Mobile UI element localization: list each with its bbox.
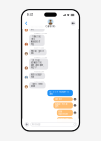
staticText: I don't even know <box>30 83 42 87</box>
button[interactable]: FaceTime <box>67 19 79 28</box>
staticText: Caroline <box>45 25 54 28</box>
button[interactable]: Add attachment <box>24 122 29 127</box>
staticText: Let's try Tuesday to take <box>49 91 69 95</box>
staticText: Read 11:14 AM <box>34 47 44 49</box>
staticText: Maybe next year <box>58 118 69 122</box>
staticText: Today 9:02 AM <box>34 71 44 72</box>
button[interactable]: Message field <box>31 122 77 126</box>
staticText: 9:41 <box>27 13 33 17</box>
staticText: Can you send me <box>30 26 42 31</box>
staticText: Early September <box>58 111 68 115</box>
staticText: I'm free between the <box>30 59 41 64</box>
staticText: August 7th at 2pm <box>55 103 68 108</box>
staticText: Been a busy year <box>30 74 41 78</box>
staticText: Today 9:19 AM <box>34 80 44 82</box>
button[interactable]: Caroline, contact info <box>43 18 58 29</box>
staticText: July 5th <box>55 98 62 100</box>
staticText: Yesterday 11:02 AM <box>34 33 47 34</box>
staticText: Hold up, gotta look <box>30 50 43 54</box>
staticText: 9am and 3pm, Aug 17 <box>30 64 44 69</box>
staticText: iMessage <box>32 123 40 126</box>
staticText: I think the third <box>30 36 40 40</box>
staticText: Yesterday 11:31 AM <box>34 56 47 58</box>
button[interactable]: Back <box>22 19 30 28</box>
staticText: weekend of Aug <box>30 41 40 45</box>
